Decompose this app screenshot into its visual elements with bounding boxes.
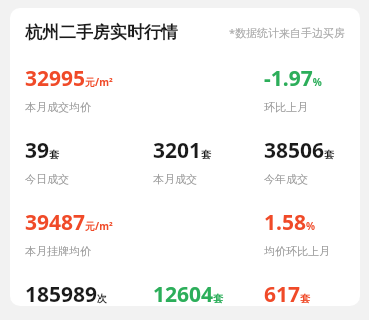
- button[interactable]: 12604套: [153, 280, 264, 306]
- staticText: 杭州二手房实时行情: [25, 22, 178, 43]
- staticText: 39套: [25, 136, 60, 165]
- button[interactable]: -1.97%: [264, 64, 346, 114]
- staticText: 38506套: [264, 136, 335, 165]
- staticText: 本月成交: [153, 172, 197, 186]
- button[interactable]: 617套: [264, 280, 346, 306]
- button[interactable]: 185989次: [25, 280, 153, 306]
- staticText: 617套: [264, 280, 311, 306]
- staticText: -1.97%: [264, 64, 322, 93]
- button[interactable]: 38506套: [264, 136, 346, 186]
- button[interactable]: 32995元/m²: [25, 64, 264, 114]
- staticText: 1.58%: [264, 208, 315, 237]
- staticText: 32995元/m²: [25, 64, 113, 93]
- button[interactable]: 39487元/m²: [25, 208, 264, 258]
- button[interactable]: 3201套: [153, 136, 264, 186]
- staticText: 3201套: [153, 136, 212, 165]
- staticText: 12604套: [153, 280, 224, 306]
- staticText: 均价环比上月: [264, 244, 330, 258]
- staticText: 今日成交: [25, 172, 69, 186]
- staticText: 环比上月: [264, 100, 308, 114]
- staticText: 185989次: [25, 280, 108, 306]
- staticText: 本月成交均价: [25, 100, 91, 114]
- staticText: 本月挂牌均价: [25, 244, 91, 258]
- staticText: 39487元/m²: [25, 208, 113, 237]
- staticText: *数据统计来自手边买房: [229, 25, 346, 40]
- button[interactable]: 39套: [25, 136, 153, 186]
- button[interactable]: 1.58%: [264, 208, 346, 258]
- staticText: 今年成交: [264, 172, 308, 186]
